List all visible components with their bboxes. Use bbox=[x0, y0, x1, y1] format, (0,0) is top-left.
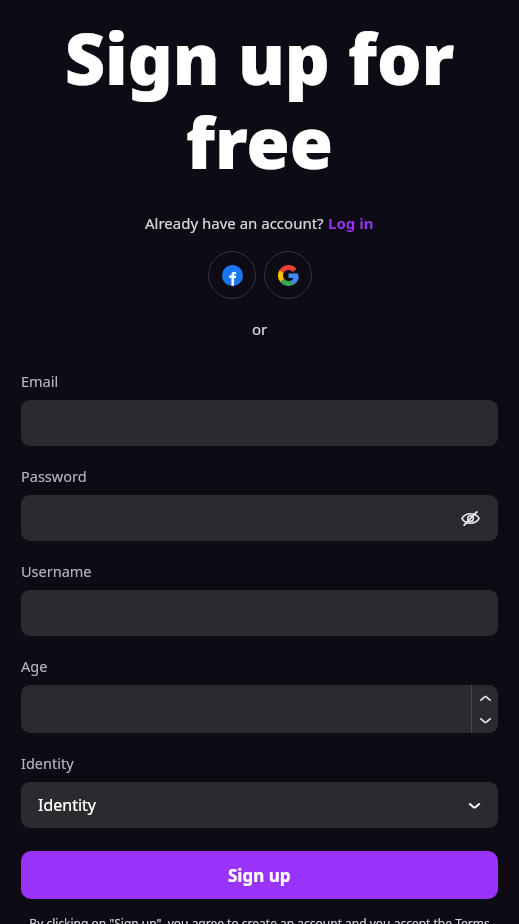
button[interactable]: Sign up bbox=[21, 851, 498, 899]
staticText: Sign up bbox=[228, 864, 291, 887]
button[interactable]: Show password bbox=[21, 495, 498, 541]
staticText: Identity bbox=[38, 794, 97, 816]
staticText: Log in bbox=[328, 213, 374, 233]
staticText: Username bbox=[21, 561, 92, 581]
staticText: Password bbox=[21, 466, 87, 486]
button[interactable]: Increase age bbox=[472, 687, 498, 709]
staticText: Age bbox=[21, 656, 48, 676]
button[interactable]: Show password bbox=[459, 507, 481, 529]
staticText: or bbox=[252, 319, 268, 339]
button[interactable]: Identity bbox=[21, 782, 498, 828]
staticText: Email bbox=[21, 371, 59, 391]
staticText: Sign up for free bbox=[0, 10, 519, 189]
button[interactable]: Decrease age bbox=[472, 709, 498, 731]
button[interactable]: Sign up with Facebook bbox=[208, 251, 256, 299]
staticText: Identity bbox=[21, 753, 74, 773]
staticText: Already have an account? bbox=[145, 213, 328, 233]
button[interactable]: Increase age bbox=[21, 685, 498, 733]
button[interactable]: Log in bbox=[328, 213, 374, 233]
staticText: By clicking on "Sign up", you agree to c… bbox=[25, 915, 494, 924]
button[interactable]: Sign up with Google bbox=[264, 251, 312, 299]
